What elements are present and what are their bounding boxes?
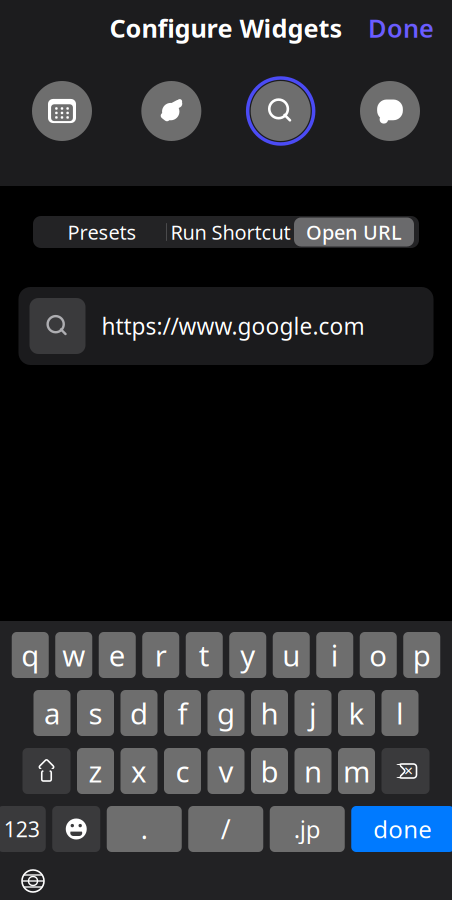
staticText: o [369,635,387,674]
staticText: done [373,813,432,845]
staticText: u [282,635,300,674]
staticText: r [155,635,167,674]
button[interactable]: x [120,748,157,794]
staticText: z [88,751,102,790]
staticText: w [62,635,85,674]
staticText: q [21,635,39,674]
staticText: l [396,693,404,732]
button[interactable]: Emoji [52,806,100,852]
staticText: Run Shortcut [170,219,290,245]
button[interactable]: s [77,690,114,736]
staticText: m [343,751,370,790]
staticText: h [260,693,278,732]
staticText: t [199,635,210,674]
button[interactable]: 123 [0,806,46,852]
staticText: b [260,751,278,790]
button[interactable]: Shift [22,748,70,794]
button[interactable]: a [33,690,70,736]
button[interactable]: d [120,690,157,736]
button[interactable]: c [164,748,201,794]
staticText: / [221,811,231,847]
staticText: j [309,693,317,732]
button[interactable]: w [55,632,92,678]
button[interactable]: l [381,690,418,736]
staticText: Presets [67,219,136,245]
staticText: e [109,635,126,674]
staticText: .jp [294,813,321,845]
staticText: . [141,811,148,847]
button[interactable]: b [251,748,288,794]
staticText: https://www.google.com [101,311,364,341]
button[interactable]: f [164,690,201,736]
button[interactable]: j [294,690,331,736]
button[interactable]: i [316,632,353,678]
button[interactable]: Messages widget [354,75,426,147]
button[interactable]: Open URL [294,217,414,246]
button[interactable]: Search widget, selected [245,75,317,147]
button[interactable]: g [207,690,244,736]
button[interactable]: Done [368,11,434,45]
button[interactable]: done [351,806,452,852]
staticText: v [218,751,233,790]
button[interactable]: h [251,690,288,736]
staticText: s [88,693,102,732]
staticText: Configure Widgets [109,11,342,45]
button[interactable]: y [229,632,266,678]
button[interactable]: t [186,632,223,678]
button[interactable]: . [107,806,182,852]
button[interactable]: o [360,632,397,678]
button[interactable]: https://www.google.com [18,287,433,365]
staticText: d [130,693,148,732]
button[interactable]: / [188,806,263,852]
staticText: i [331,635,339,674]
button[interactable]: Next keyboard [9,866,57,896]
button[interactable]: e [99,632,136,678]
staticText: n [304,751,322,790]
staticText: f [177,693,187,732]
button[interactable]: u [273,632,310,678]
button[interactable]: m [338,748,375,794]
button[interactable]: Presets [38,216,166,248]
button[interactable]: .jp [270,806,345,852]
button[interactable]: p [403,632,440,678]
button[interactable]: Twitter widget [135,75,207,147]
button[interactable]: Calendar widget [26,75,98,147]
staticText: a [44,693,60,732]
button[interactable]: Delete [381,748,429,794]
staticText: Done [368,11,434,45]
button[interactable]: v [207,748,244,794]
staticText: y [240,635,255,674]
staticText: Open URL [306,219,402,245]
button[interactable]: k [338,690,375,736]
staticText: p [413,635,431,674]
staticText: c [175,751,189,790]
button[interactable]: q [12,632,49,678]
button[interactable]: Run Shortcut [167,216,294,248]
staticText: k [348,693,364,732]
button[interactable]: r [142,632,179,678]
staticText: ✕ [403,764,413,778]
staticText: 123 [4,815,40,843]
staticText: x [131,751,147,790]
staticText: g [217,693,235,732]
button[interactable]: n [294,748,331,794]
button[interactable]: z [77,748,114,794]
